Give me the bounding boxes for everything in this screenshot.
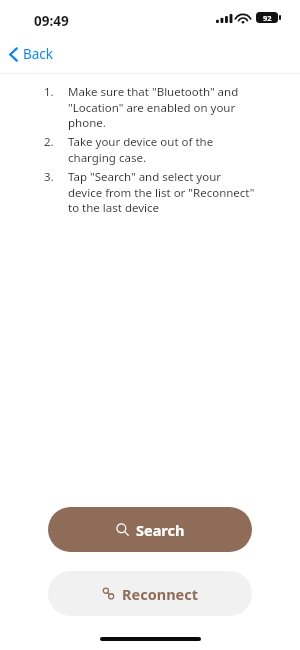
button[interactable]: Search <box>48 507 252 552</box>
staticText: Tap "Search" and select your device from… <box>68 169 256 215</box>
staticText: 3. <box>44 169 54 185</box>
staticText: Reconnect <box>122 584 198 604</box>
staticText: 92 <box>263 13 272 23</box>
staticText: 1. <box>44 84 54 100</box>
staticText: Search <box>136 520 185 540</box>
staticText: Make sure that "Bluetooth" and "Location… <box>68 84 256 130</box>
button[interactable]: Reconnect <box>48 571 252 616</box>
staticText: Back <box>23 45 54 63</box>
button[interactable]: Back <box>0 42 66 66</box>
staticText: Take your device out of the charging cas… <box>68 134 256 165</box>
staticText: 2. <box>44 134 54 150</box>
staticText: 09:49 <box>34 12 69 30</box>
